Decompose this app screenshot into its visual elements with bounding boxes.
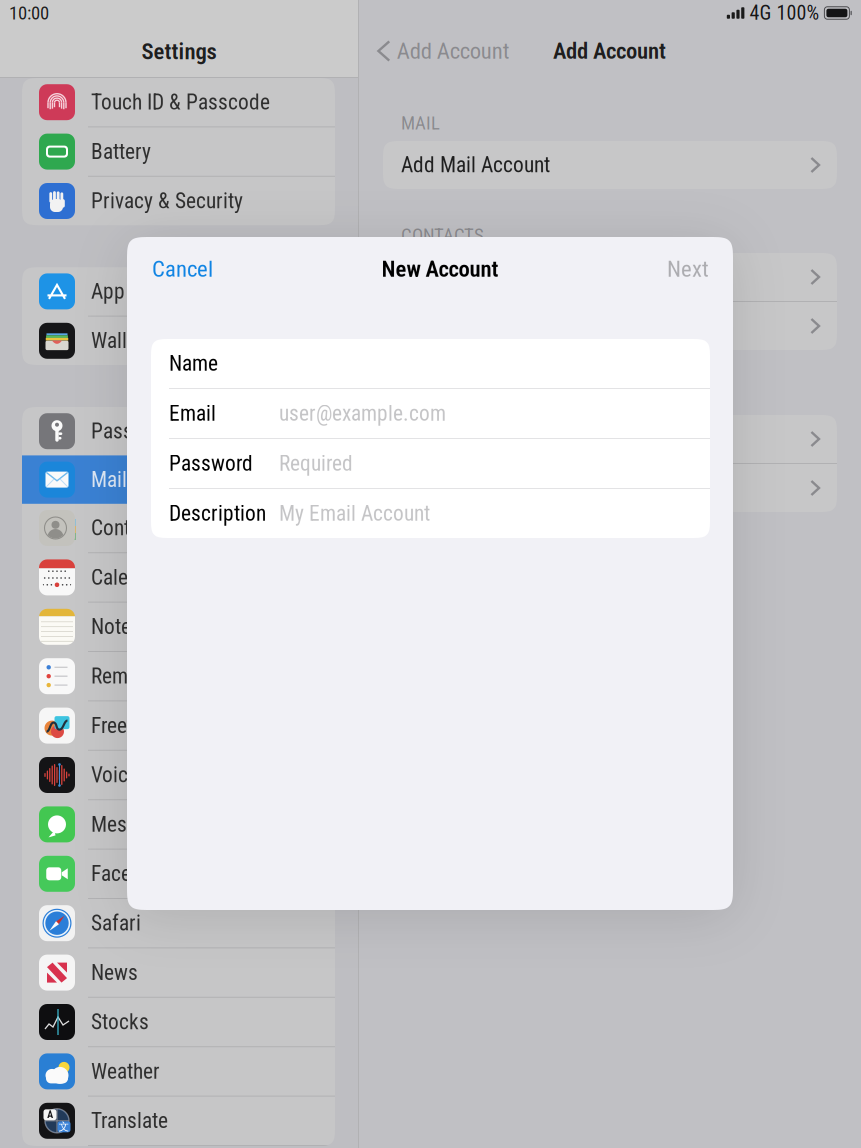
staticText: Name bbox=[169, 351, 218, 376]
staticText: Add Account bbox=[397, 38, 510, 64]
button[interactable]: Voice Memos bbox=[22, 751, 335, 799]
button[interactable]: Weather bbox=[22, 1047, 335, 1096]
staticText: Add Mail Account bbox=[401, 152, 550, 177]
staticText: Weather bbox=[91, 1059, 160, 1084]
staticText: Password bbox=[169, 451, 253, 476]
button[interactable]: Cancel bbox=[152, 248, 213, 290]
staticText: Required bbox=[279, 451, 353, 476]
staticText: CONTACTS bbox=[401, 224, 484, 246]
button[interactable]: Touch ID & Passcode bbox=[22, 78, 335, 126]
button[interactable]: Battery bbox=[22, 127, 335, 176]
button[interactable]: News bbox=[22, 948, 335, 997]
staticText: Next bbox=[667, 256, 709, 282]
button[interactable]: App Store bbox=[22, 267, 335, 316]
staticText: Add Account bbox=[553, 38, 666, 64]
staticText: Email bbox=[169, 401, 216, 426]
staticText: New Account bbox=[381, 256, 498, 282]
button[interactable]: Calendar bbox=[22, 553, 335, 602]
staticText: Cancel bbox=[152, 256, 213, 282]
staticText: Notes bbox=[91, 614, 141, 639]
button[interactable]: Mail bbox=[22, 455, 335, 504]
staticText: News bbox=[91, 960, 138, 985]
button[interactable]: Reminders bbox=[22, 652, 335, 700]
staticText: A bbox=[47, 1108, 53, 1121]
button[interactable]: Add Mail Account bbox=[383, 141, 837, 189]
staticText: Reminders bbox=[91, 664, 181, 689]
staticText: Mail bbox=[91, 467, 127, 492]
button[interactable]: FaceTime bbox=[22, 850, 335, 898]
button[interactable] bbox=[383, 464, 837, 512]
staticText: App Store bbox=[91, 279, 174, 304]
staticText: Touch ID & Passcode bbox=[91, 90, 270, 115]
staticText: user@example.com bbox=[279, 401, 446, 426]
staticText: 4G 100% bbox=[749, 1, 819, 25]
button[interactable]: Stocks bbox=[22, 998, 335, 1046]
staticText: My Email Account bbox=[279, 501, 430, 526]
staticText: Passwords bbox=[91, 419, 185, 444]
staticText: 10:00 bbox=[9, 2, 49, 24]
button[interactable] bbox=[383, 253, 837, 301]
staticText: Freeform bbox=[91, 713, 168, 738]
button[interactable]: Next bbox=[667, 248, 709, 290]
button[interactable]: Safari bbox=[22, 899, 335, 947]
button[interactable]: A bbox=[22, 1097, 335, 1145]
button[interactable]: Messages bbox=[22, 800, 335, 849]
staticText: MAIL bbox=[401, 112, 440, 134]
staticText: Safari bbox=[91, 911, 141, 936]
button[interactable]: Add Account bbox=[377, 30, 516, 72]
staticText: Translate bbox=[91, 1108, 168, 1133]
staticText: Battery bbox=[91, 139, 151, 164]
button[interactable]: Wallet bbox=[22, 317, 335, 365]
staticText: Description bbox=[169, 501, 266, 526]
button[interactable]: Contacts bbox=[22, 504, 335, 552]
button[interactable] bbox=[383, 415, 837, 463]
button[interactable]: Notes bbox=[22, 603, 335, 651]
button[interactable]: Passwords bbox=[22, 407, 335, 455]
staticText: 文 bbox=[58, 1120, 69, 1133]
staticText: Voice Memos bbox=[91, 762, 206, 787]
staticText: Wallet bbox=[91, 328, 143, 353]
staticText: FaceTime bbox=[91, 861, 173, 886]
staticText: Privacy & Security bbox=[91, 188, 243, 213]
button[interactable]: Privacy & Security bbox=[22, 177, 335, 225]
staticText: Messages bbox=[91, 812, 178, 837]
button[interactable] bbox=[383, 302, 837, 350]
staticText: Calendar bbox=[91, 565, 166, 590]
staticText: Settings bbox=[141, 38, 216, 65]
staticText: Contacts bbox=[91, 515, 166, 540]
staticText: Stocks bbox=[91, 1009, 149, 1034]
button[interactable]: Freeform bbox=[22, 701, 335, 750]
